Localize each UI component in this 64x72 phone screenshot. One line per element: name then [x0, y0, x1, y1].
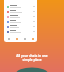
button[interactable]	[4, 29, 37, 34]
staticText: All your chats in one	[16, 54, 48, 58]
button[interactable]	[4, 19, 37, 24]
button[interactable]	[4, 4, 37, 9]
button[interactable]	[4, 24, 37, 29]
staticText: simple place	[22, 58, 42, 62]
button[interactable]: Nav 3	[29, 36, 37, 42]
button[interactable]: Nav 2	[21, 36, 29, 42]
button[interactable]: Nav 1	[13, 36, 21, 42]
button[interactable]	[4, 9, 37, 14]
button[interactable]	[4, 14, 37, 19]
button[interactable]: Nav 0	[4, 36, 13, 42]
